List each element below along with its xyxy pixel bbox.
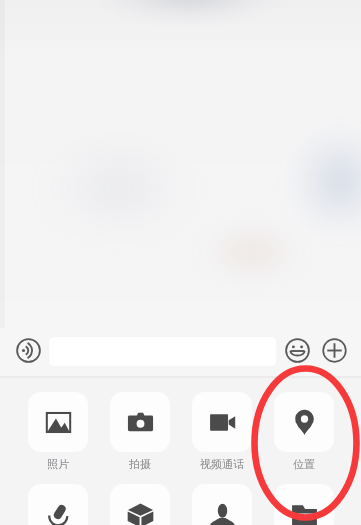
button[interactable]: 拍摄 bbox=[110, 392, 170, 471]
staticText: 视频通话 bbox=[200, 457, 244, 471]
button[interactable] bbox=[110, 484, 170, 525]
button[interactable]: 视频通话 bbox=[192, 392, 252, 471]
button[interactable]: 位置 bbox=[274, 392, 334, 471]
staticText: 照片 bbox=[47, 457, 69, 471]
staticText: 位置 bbox=[293, 457, 315, 471]
button[interactable]: More functions bbox=[312, 328, 357, 372]
button[interactable] bbox=[274, 484, 334, 525]
button[interactable]: 照片 bbox=[28, 392, 88, 471]
button[interactable] bbox=[28, 484, 88, 525]
button[interactable]: Voice input bbox=[5, 328, 51, 372]
staticText: 拍摄 bbox=[129, 457, 151, 471]
button[interactable]: Emoji bbox=[275, 328, 319, 372]
button[interactable] bbox=[192, 484, 252, 525]
